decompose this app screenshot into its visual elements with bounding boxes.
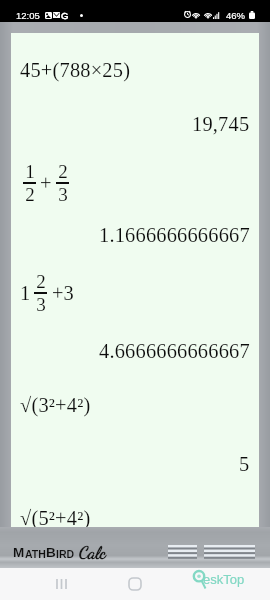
staticText: 5 — [239, 453, 250, 476]
staticText: √(5²+4²) — [20, 507, 91, 530]
staticText: 3 — [36, 294, 46, 315]
button[interactable]: Back — [187, 568, 231, 600]
staticText: 2 — [58, 161, 68, 182]
button[interactable]: Menu — [204, 545, 255, 559]
staticText: eskTop — [203, 572, 245, 587]
staticText: IRD — [56, 548, 75, 560]
staticText: ATH — [25, 548, 46, 560]
staticText: G — [61, 10, 69, 21]
button[interactable]: M — [13, 538, 106, 560]
staticText: +3 — [52, 282, 74, 305]
button[interactable]: Recent apps — [39, 568, 83, 600]
staticText: 19,745 — [192, 113, 250, 136]
staticText: 2 — [36, 271, 46, 292]
staticText: 4.6666666666667 — [99, 340, 250, 363]
staticText: 1.1666666666667 — [99, 224, 250, 247]
staticText: 3 — [58, 184, 68, 205]
staticText: √(3²+4²) — [20, 394, 91, 417]
staticText: Calc — [79, 541, 106, 563]
staticText: B — [46, 545, 56, 560]
staticText: 1 — [25, 161, 35, 182]
staticText: + — [40, 172, 52, 195]
staticText: 12:05 — [16, 10, 40, 21]
button[interactable]: Menu — [168, 545, 197, 559]
staticText: 2 — [25, 184, 35, 205]
staticText: 45+(788×25) — [20, 59, 131, 82]
staticText: M — [13, 545, 25, 560]
button[interactable]: Home — [113, 568, 157, 600]
staticText: 1 — [20, 282, 31, 305]
staticText: 46% — [226, 10, 246, 21]
